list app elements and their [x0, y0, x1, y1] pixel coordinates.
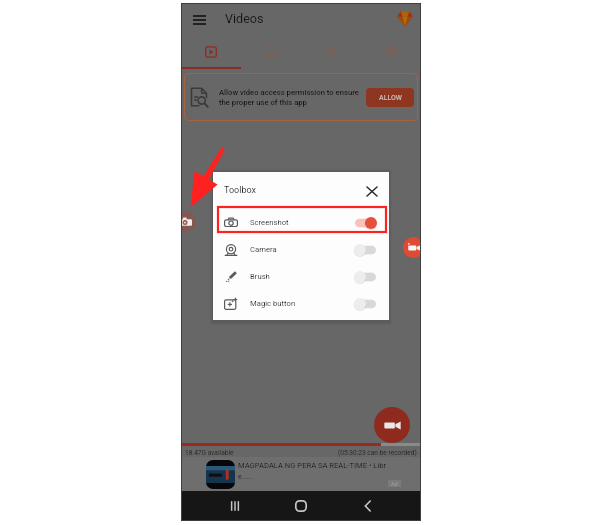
staticText: e...... — [238, 473, 253, 481]
staticText: Brush — [250, 272, 270, 281]
button[interactable]: ALLOW — [366, 88, 414, 107]
button[interactable]: Recents — [222, 493, 248, 519]
button[interactable]: Camera — [213, 237, 389, 262]
button[interactable]: Back — [355, 493, 381, 519]
button[interactable]: Close — [362, 181, 382, 201]
staticText: Videos — [225, 11, 264, 26]
button[interactable]: Home — [288, 493, 314, 519]
staticText: Ad — [391, 481, 398, 487]
staticText: 18.47G available — [185, 449, 234, 457]
staticText: ALLOW — [379, 94, 402, 102]
button[interactable]: Videos — [181, 37, 241, 70]
button[interactable]: Record video — [374, 407, 410, 443]
button[interactable]: Menu — [186, 7, 212, 33]
button[interactable]: Magic button — [213, 291, 389, 316]
staticText: Magic button — [250, 299, 296, 308]
button[interactable]: Brush — [213, 264, 389, 289]
button[interactable]: Premium — [393, 7, 416, 30]
staticText: Camera — [250, 245, 277, 254]
staticText: Allow video access permission to ensure … — [219, 88, 362, 106]
button[interactable]: Screenshot — [213, 210, 389, 235]
staticText: Screenshot — [250, 218, 289, 227]
button[interactable]: Record shortcut — [403, 237, 421, 258]
staticText: MAGPADALA NG PERA SA REAL-TIME • Libr — [238, 461, 387, 470]
button[interactable]: Allow video access permission to ensure … — [184, 73, 418, 121]
staticText: (05:30:23 can be recorded) — [338, 449, 417, 457]
staticText: Toolbox — [224, 185, 256, 196]
button[interactable]: Screenshot shortcut — [181, 211, 196, 232]
button[interactable]: Settings — [361, 37, 421, 70]
